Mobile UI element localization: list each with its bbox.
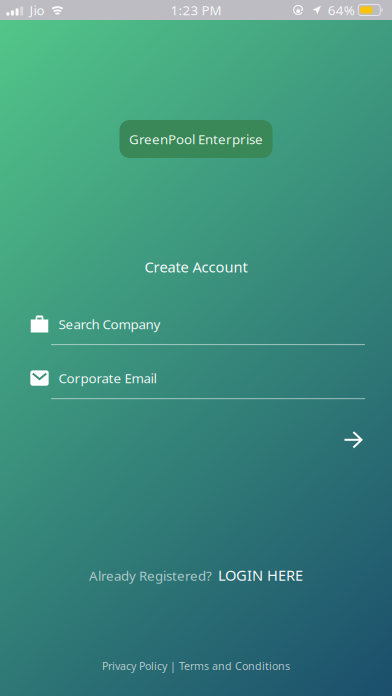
button[interactable]: Already Registered? [75,558,317,592]
staticText: Corporate Email [58,369,156,387]
staticText: LOGIN HERE [218,565,303,585]
button[interactable]: Search Company [30,315,365,345]
staticText: 1:23 PM [170,1,221,19]
staticText: GreenPool Enterprise [129,130,263,148]
staticText: Create Account [144,257,247,276]
button[interactable]: Corporate Email [30,370,365,399]
staticText: Jio [29,1,44,19]
button[interactable]: Continue [336,423,370,456]
staticText: Privacy Policy | Terms and Conditions [102,659,290,673]
button[interactable]: Privacy Policy | Terms and Conditions [90,653,302,679]
staticText: Search Company [58,315,160,333]
staticText: 64% [328,1,355,19]
staticText: Already Registered? [89,567,212,584]
